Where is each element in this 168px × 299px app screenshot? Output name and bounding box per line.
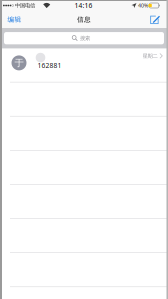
button[interactable]: 编辑 [1, 12, 27, 27]
button[interactable]: New Message [146, 12, 165, 27]
staticText: 14:16 [74, 1, 92, 10]
staticText: 于 [14, 57, 23, 69]
staticText: 编辑 [7, 15, 21, 24]
button[interactable]: 搜索 [4, 32, 164, 44]
staticText: 40% [138, 2, 148, 9]
staticText: 搜索 [80, 35, 90, 41]
staticText: 162881 [37, 61, 61, 70]
button[interactable]: 于 [0, 48, 168, 82]
staticText: 中国电信 [15, 2, 35, 9]
staticText: 信息 [77, 15, 91, 24]
staticText: 星期二 [143, 53, 158, 59]
